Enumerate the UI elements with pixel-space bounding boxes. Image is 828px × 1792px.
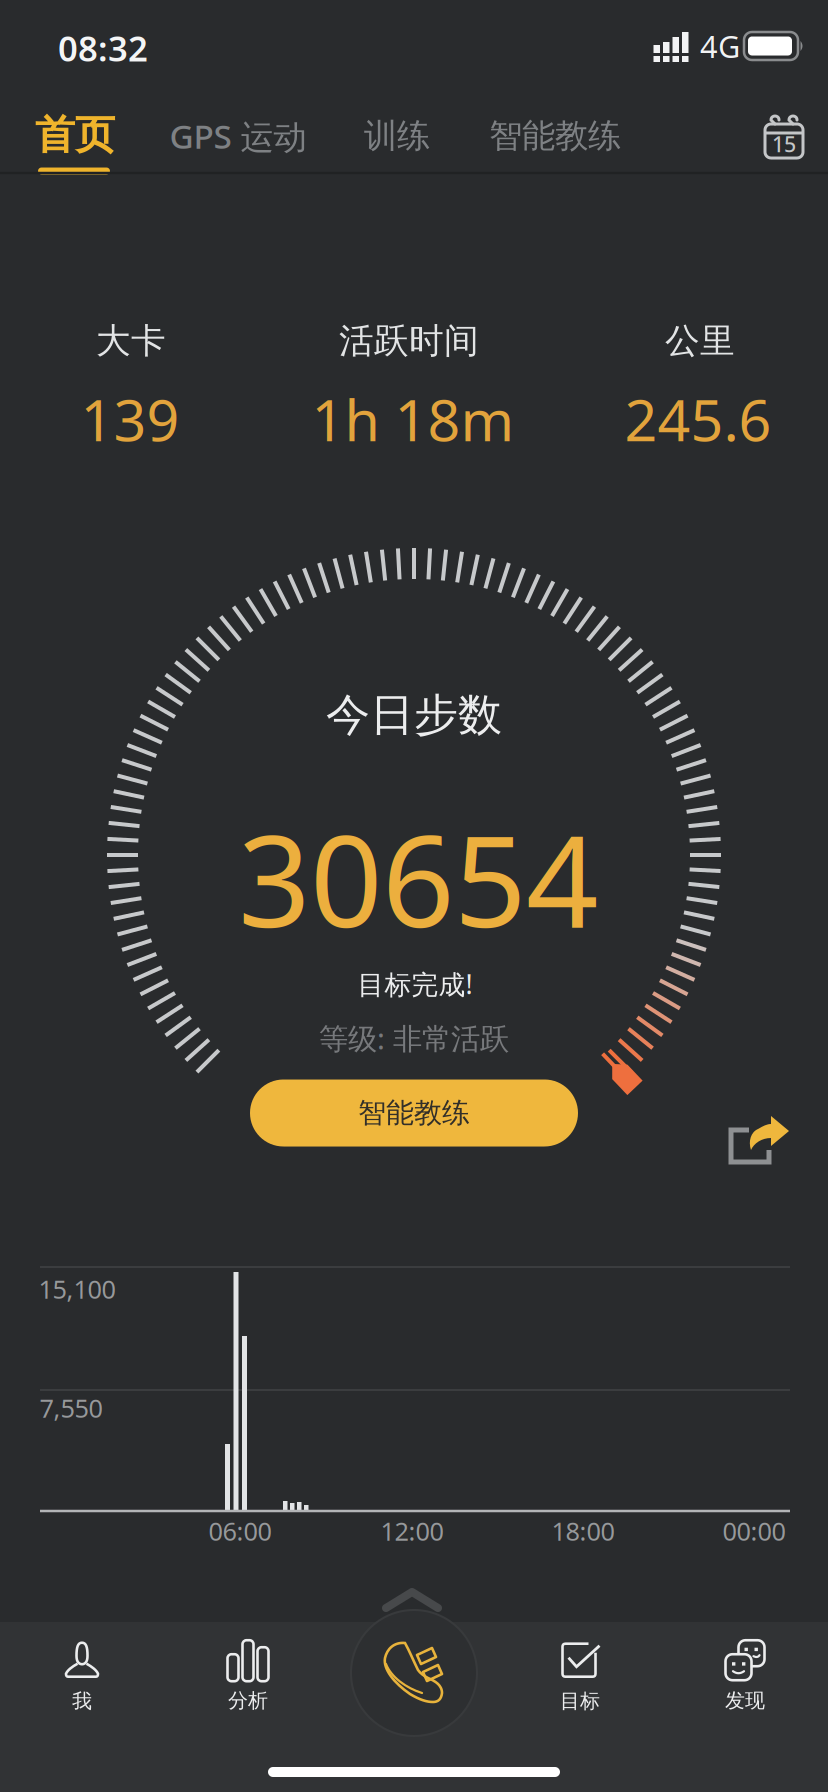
button[interactable]: 我	[22, 1632, 142, 1722]
staticText: 公里	[665, 320, 735, 362]
staticText: GPS 运动	[169, 114, 306, 158]
button[interactable]: Share	[729, 1116, 791, 1164]
button[interactable]: 分析	[188, 1631, 308, 1721]
staticText: 08:32	[58, 25, 148, 71]
button[interactable]: Steps	[349, 1618, 479, 1728]
button[interactable]: 智能教练	[250, 1079, 578, 1146]
staticText: 分析	[228, 1688, 268, 1713]
button[interactable]: 训练	[364, 115, 430, 156]
staticText: 智能教练	[358, 1096, 470, 1130]
staticText: 目标	[560, 1689, 600, 1713]
staticText: 139	[80, 381, 179, 457]
staticText: 06:00	[208, 1514, 271, 1548]
button[interactable]: 目标	[520, 1632, 640, 1722]
staticText: 1h 18m	[311, 381, 514, 457]
button[interactable]: Calendar	[763, 114, 805, 160]
staticText: 智能教练	[489, 115, 621, 156]
button[interactable]: GPS 运动	[169, 114, 306, 158]
staticText: 发现	[725, 1688, 765, 1713]
staticText: 首页	[35, 110, 115, 159]
staticText: 4G	[700, 26, 740, 66]
button[interactable]: 首页	[35, 110, 115, 159]
button[interactable]: 智能教练	[489, 115, 621, 156]
staticText: 今日步数	[326, 688, 502, 742]
staticText: 7,550	[39, 1391, 102, 1425]
staticText: 15,100	[38, 1272, 115, 1306]
staticText: 18:00	[551, 1514, 614, 1548]
staticText: 训练	[364, 115, 430, 156]
staticText: 等级: 非常活跃	[319, 1018, 509, 1057]
staticText: 目标完成!	[357, 966, 472, 1002]
button[interactable]: 发现	[685, 1631, 805, 1721]
staticText: 活跃时间	[339, 320, 479, 362]
staticText: 30654	[238, 794, 598, 962]
staticText: 00:00	[722, 1514, 785, 1548]
button[interactable]: Expand	[372, 1588, 452, 1614]
staticText: 大卡	[96, 320, 166, 362]
staticText: 我	[72, 1689, 92, 1713]
staticText: 12:00	[380, 1514, 443, 1548]
staticText: 15	[772, 130, 796, 158]
staticText: 245.6	[624, 381, 771, 457]
